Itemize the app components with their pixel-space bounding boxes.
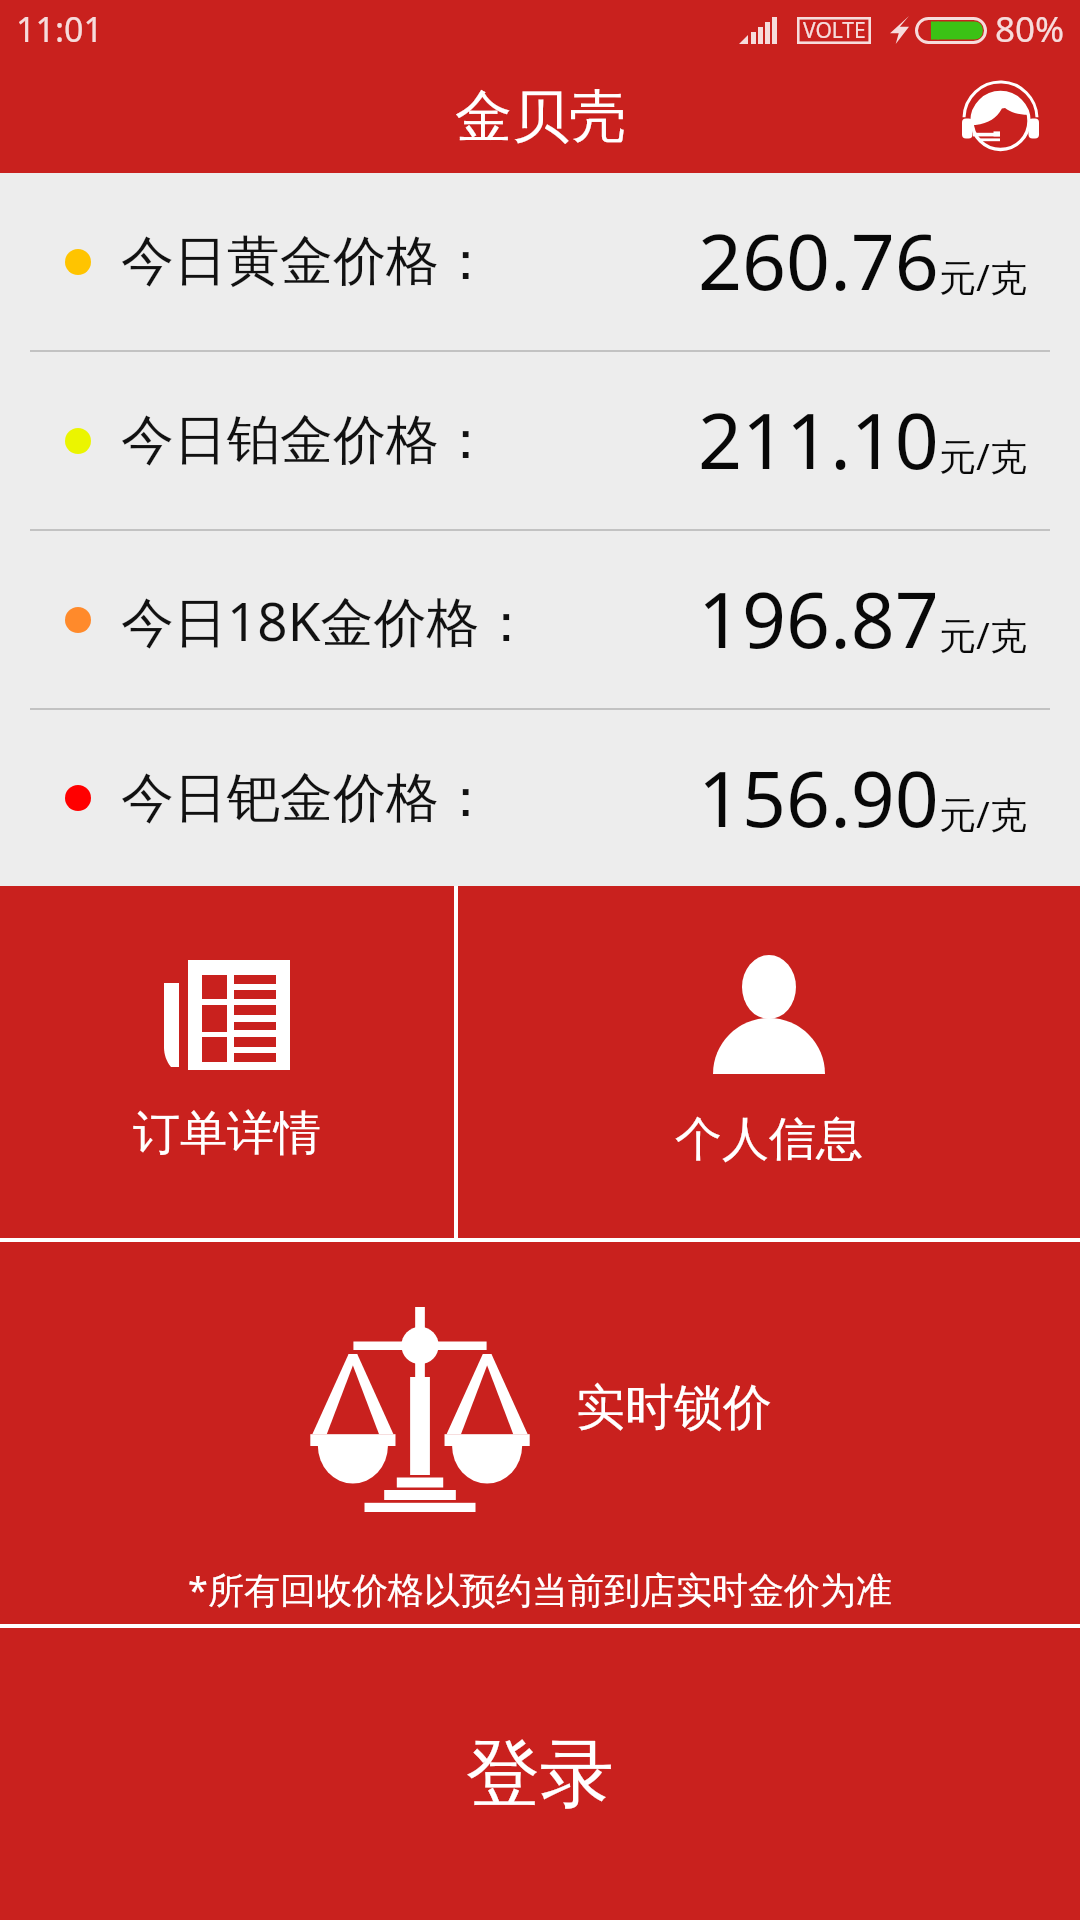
button[interactable]: 订单详情 [0,886,454,1238]
staticText: 订单详情 [133,1104,321,1163]
staticText: 今日黄金价格： [121,228,492,295]
staticText: *所有回收价格以预约当前到店实时金价为准 [0,1565,1080,1614]
staticText: 元/克 [939,430,1027,481]
button[interactable]: 今日黄金价格： [0,173,1080,350]
staticText: 今日18K金价格： [121,584,533,656]
button[interactable]: 今日18K金价格： [0,531,1080,708]
staticText: 元/克 [939,251,1027,302]
staticText: 实时锁价 [576,1377,772,1439]
staticText: 80% [995,5,1065,53]
button[interactable]: 今日钯金价格： [0,710,1080,886]
button[interactable]: 今日铂金价格： [0,352,1080,529]
staticText: 元/克 [939,788,1027,839]
staticText: 211.10 [698,387,939,492]
staticText: 个人信息 [675,1110,863,1169]
button[interactable]: 个人信息 [458,886,1080,1238]
staticText: 今日钯金价格： [121,765,492,832]
button[interactable]: 实时锁价 [308,1307,772,1512]
staticText: 金贝壳 [455,81,626,153]
staticText: 11:01 [16,6,103,52]
staticText: 元/克 [939,609,1027,660]
staticText: 196.87 [698,566,939,671]
staticText: 260.76 [698,208,939,313]
staticText: VOLTE [803,16,866,43]
staticText: 登录 [466,1728,614,1821]
staticText: 今日铂金价格： [121,407,492,474]
button[interactable]: Customer service [948,64,1053,169]
button[interactable]: 登录 [0,1628,1080,1920]
staticText: 156.90 [698,745,939,850]
